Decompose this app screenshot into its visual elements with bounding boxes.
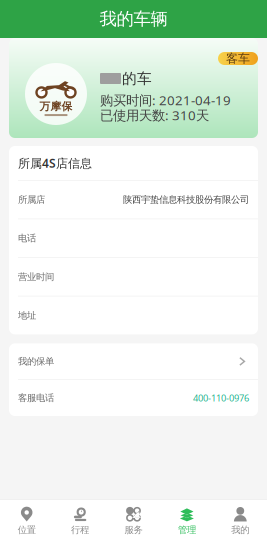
staticText: 地址: [18, 310, 36, 321]
staticText: 已使用天数: 310天: [100, 106, 209, 124]
staticText: 我的车辆: [99, 8, 167, 30]
staticText: 万摩保: [39, 100, 72, 113]
staticText: 客服电话: [18, 392, 54, 404]
button[interactable]: 客车: [218, 52, 258, 65]
button[interactable]: 我的保单: [9, 343, 258, 379]
button[interactable]: 行程: [53, 500, 107, 542]
button[interactable]: 营业时间: [9, 258, 258, 296]
staticText: 陕西宇蛰信息科技股份有限公司: [123, 194, 249, 205]
button[interactable]: 所属店: [9, 181, 258, 219]
staticText: 所属店: [18, 194, 45, 205]
staticText: 位置: [18, 524, 36, 536]
button[interactable]: 客服电话: [9, 380, 258, 416]
staticText: 的车: [122, 69, 152, 87]
staticText: 服务: [124, 524, 142, 536]
button[interactable]: 位置: [0, 500, 53, 542]
staticText: 购买时间: 2021-04-19: [100, 91, 231, 109]
staticText: 行程: [71, 524, 89, 536]
staticText: 电话: [18, 232, 36, 244]
staticText: 我的保单: [18, 356, 54, 367]
staticText: 我的: [231, 524, 249, 536]
staticText: 管理: [178, 524, 196, 536]
button[interactable]: 地址: [9, 296, 258, 334]
staticText: 营业时间: [18, 271, 54, 283]
button[interactable]: 电话: [9, 219, 258, 257]
button[interactable]: 服务: [107, 500, 160, 542]
staticText: 客车: [226, 51, 250, 66]
button[interactable]: 我的: [214, 500, 267, 542]
button[interactable]: 管理: [160, 500, 214, 542]
staticText: 所属4S店信息: [18, 155, 92, 171]
staticText: 400-110-0976: [193, 392, 249, 404]
